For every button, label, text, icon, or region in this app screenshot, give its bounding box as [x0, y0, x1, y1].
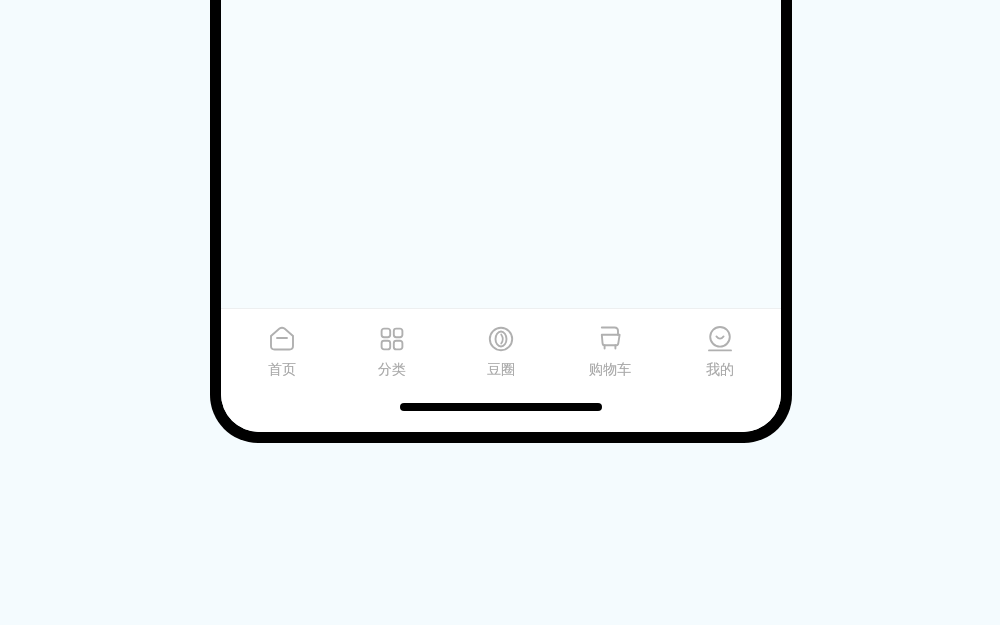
button[interactable]: Profile [672, 319, 768, 383]
staticText: 我的 [706, 361, 734, 379]
button[interactable]: Categories [344, 319, 440, 383]
staticText: 购物车 [589, 361, 631, 379]
staticText: 分类 [378, 361, 406, 379]
staticText: 首页 [268, 361, 296, 379]
staticText: 豆圈 [487, 361, 515, 379]
button[interactable]: Home [234, 319, 330, 383]
button[interactable]: Shopping cart [562, 319, 658, 383]
button[interactable]: Bean Circle [453, 319, 549, 383]
